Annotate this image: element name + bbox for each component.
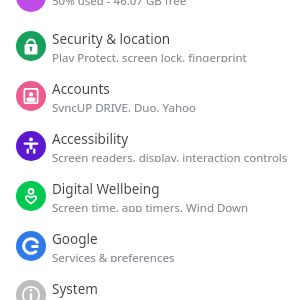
button[interactable]: System: [0, 280, 300, 300]
staticText: Accessibility: [52, 130, 129, 148]
staticText: Security & location: [52, 30, 171, 48]
button[interactable]: Accounts: [0, 80, 300, 112]
staticText: Digital Wellbeing: [52, 180, 160, 198]
staticText: Screen readers, display, interaction con…: [52, 150, 288, 162]
staticText: Services & preferences: [52, 250, 175, 262]
staticText: Screen time, app timers, Wind Down: [52, 200, 249, 212]
button[interactable]: Google: [0, 230, 300, 262]
staticText: Accounts: [52, 80, 110, 98]
staticText: Play Protect, screen lock, fingerprint: [52, 50, 247, 62]
staticText: SyncUP DRIVE, Duo, Yahoo: [52, 100, 196, 112]
staticText: Google: [52, 230, 98, 248]
button[interactable]: Security & location: [0, 30, 300, 62]
staticText: 50% used - 46.07 GB free: [52, 0, 187, 5]
staticText: System: [52, 280, 98, 298]
button[interactable]: 50% used - 46.07 GB free: [0, 0, 300, 12]
button[interactable]: Digital Wellbeing: [0, 180, 300, 212]
button[interactable]: Accessibility: [0, 130, 300, 162]
